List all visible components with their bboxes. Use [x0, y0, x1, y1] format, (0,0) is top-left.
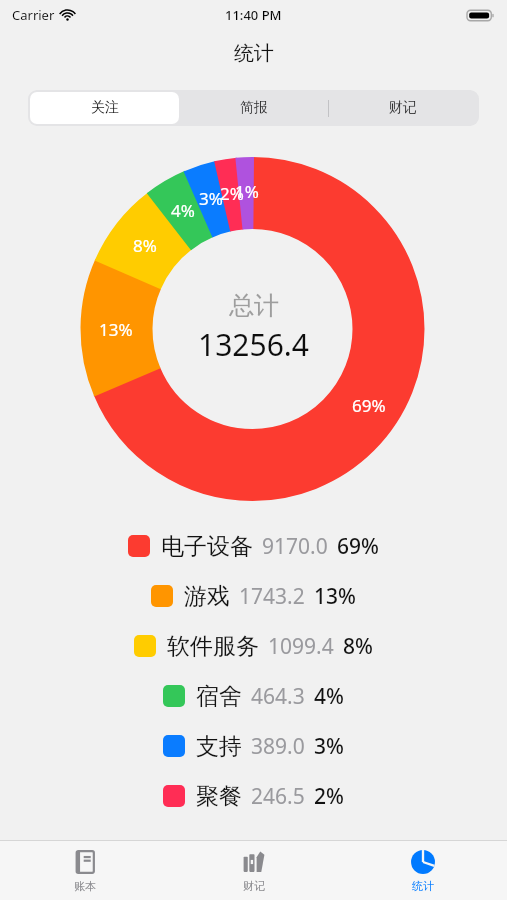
- staticText: 4%: [314, 682, 344, 711]
- button[interactable]: 宿舍: [163, 671, 344, 721]
- staticText: 246.5: [251, 782, 305, 811]
- staticText: 简报: [240, 99, 268, 117]
- staticText: 1743.2: [239, 582, 305, 611]
- staticText: 软件服务: [167, 632, 259, 661]
- staticText: 总计: [229, 290, 279, 321]
- button[interactable]: 支持: [163, 721, 344, 771]
- staticText: 464.3: [251, 682, 305, 711]
- staticText: 69%: [337, 532, 379, 561]
- staticText: 8%: [343, 632, 373, 661]
- staticText: 聚餐: [196, 782, 242, 811]
- staticText: 11:40 PM: [225, 6, 282, 24]
- staticText: 游戏: [184, 582, 230, 611]
- button[interactable]: 财记: [169, 841, 338, 900]
- staticText: 1099.4: [268, 632, 334, 661]
- staticText: 支持: [196, 732, 242, 761]
- button[interactable]: 关注: [30, 92, 179, 124]
- staticText: 13%: [99, 318, 133, 341]
- button[interactable]: 电子设备: [128, 521, 379, 571]
- button[interactable]: 账本: [0, 841, 169, 900]
- staticText: 2%: [220, 182, 244, 205]
- staticText: 统计: [412, 879, 434, 893]
- staticText: Carrier: [12, 6, 55, 24]
- staticText: 宿舍: [196, 682, 242, 711]
- staticText: 389.0: [251, 732, 305, 761]
- staticText: 69%: [352, 394, 386, 417]
- button[interactable]: 财记: [329, 92, 477, 124]
- button[interactable]: 简报: [180, 92, 328, 124]
- button[interactable]: 软件服务: [134, 621, 373, 671]
- staticText: 财记: [389, 99, 417, 117]
- staticText: 8%: [133, 234, 157, 257]
- button[interactable]: 统计: [338, 841, 507, 900]
- staticText: 4%: [171, 199, 195, 222]
- staticText: 9170.0: [262, 532, 328, 561]
- staticText: 账本: [74, 879, 96, 893]
- staticText: 13256.4: [198, 324, 309, 365]
- staticText: 统计: [234, 41, 274, 66]
- staticText: 3%: [314, 732, 344, 761]
- button[interactable]: 游戏: [151, 571, 356, 621]
- staticText: 电子设备: [161, 532, 253, 561]
- staticText: 2%: [314, 782, 344, 811]
- staticText: 1%: [235, 180, 259, 203]
- button[interactable]: 聚餐: [163, 771, 344, 821]
- staticText: 关注: [91, 99, 119, 117]
- staticText: 13%: [314, 582, 356, 611]
- staticText: 财记: [243, 879, 265, 893]
- staticText: 3%: [199, 187, 223, 210]
